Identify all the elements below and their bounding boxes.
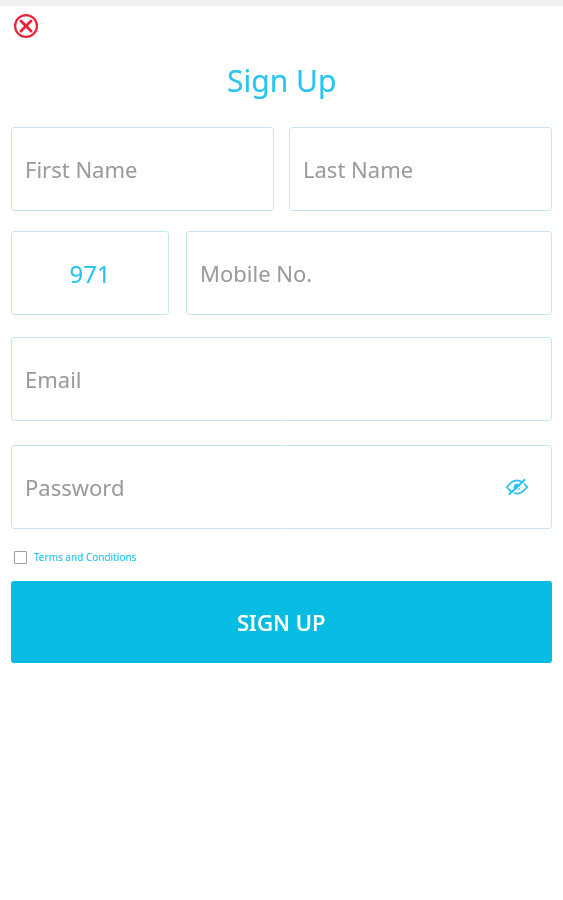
staticText: Terms and Conditions (34, 550, 137, 564)
button[interactable]: Email (11, 337, 552, 421)
button[interactable]: SIGN UP (11, 581, 552, 663)
button[interactable]: 971 (11, 231, 169, 315)
staticText: SIGN UP (237, 607, 326, 637)
button[interactable]: Terms and Conditions (14, 550, 137, 564)
staticText: Password (25, 472, 125, 502)
button[interactable]: Password (11, 445, 552, 529)
staticText: Email (25, 364, 82, 394)
button[interactable]: Close (11, 11, 41, 41)
staticText: Sign Up (227, 60, 337, 101)
button[interactable]: Last Name (289, 127, 552, 211)
button[interactable]: Mobile No. (186, 231, 552, 315)
staticText: First Name (25, 154, 138, 184)
staticText: Last Name (303, 154, 414, 184)
staticText: 971 (69, 257, 111, 290)
button[interactable]: Show password (502, 472, 532, 502)
button[interactable]: First Name (11, 127, 274, 211)
staticText: Mobile No. (200, 258, 313, 288)
